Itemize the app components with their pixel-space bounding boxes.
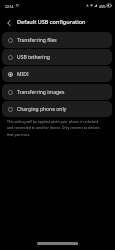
staticText: MIDI (17, 71, 29, 78)
button[interactable]: MIDI (2, 66, 112, 82)
button[interactable]: Back (1, 15, 17, 31)
staticText: Default USB configuration (17, 18, 86, 25)
button[interactable]: USB tethering (2, 49, 112, 65)
button[interactable]: Transferring files (2, 32, 112, 48)
staticText: Transferring images (17, 89, 65, 96)
button[interactable]: Charging phone only (2, 101, 112, 117)
staticText: 22:14 (5, 4, 14, 8)
staticText: This setting will be applied when your p… (7, 119, 105, 137)
button[interactable]: Transferring images (2, 84, 112, 100)
staticText: 45% (99, 4, 106, 8)
staticText: Charging phone only (17, 106, 67, 113)
staticText: Transferring files (17, 37, 57, 44)
staticText: USB tethering (17, 54, 50, 61)
